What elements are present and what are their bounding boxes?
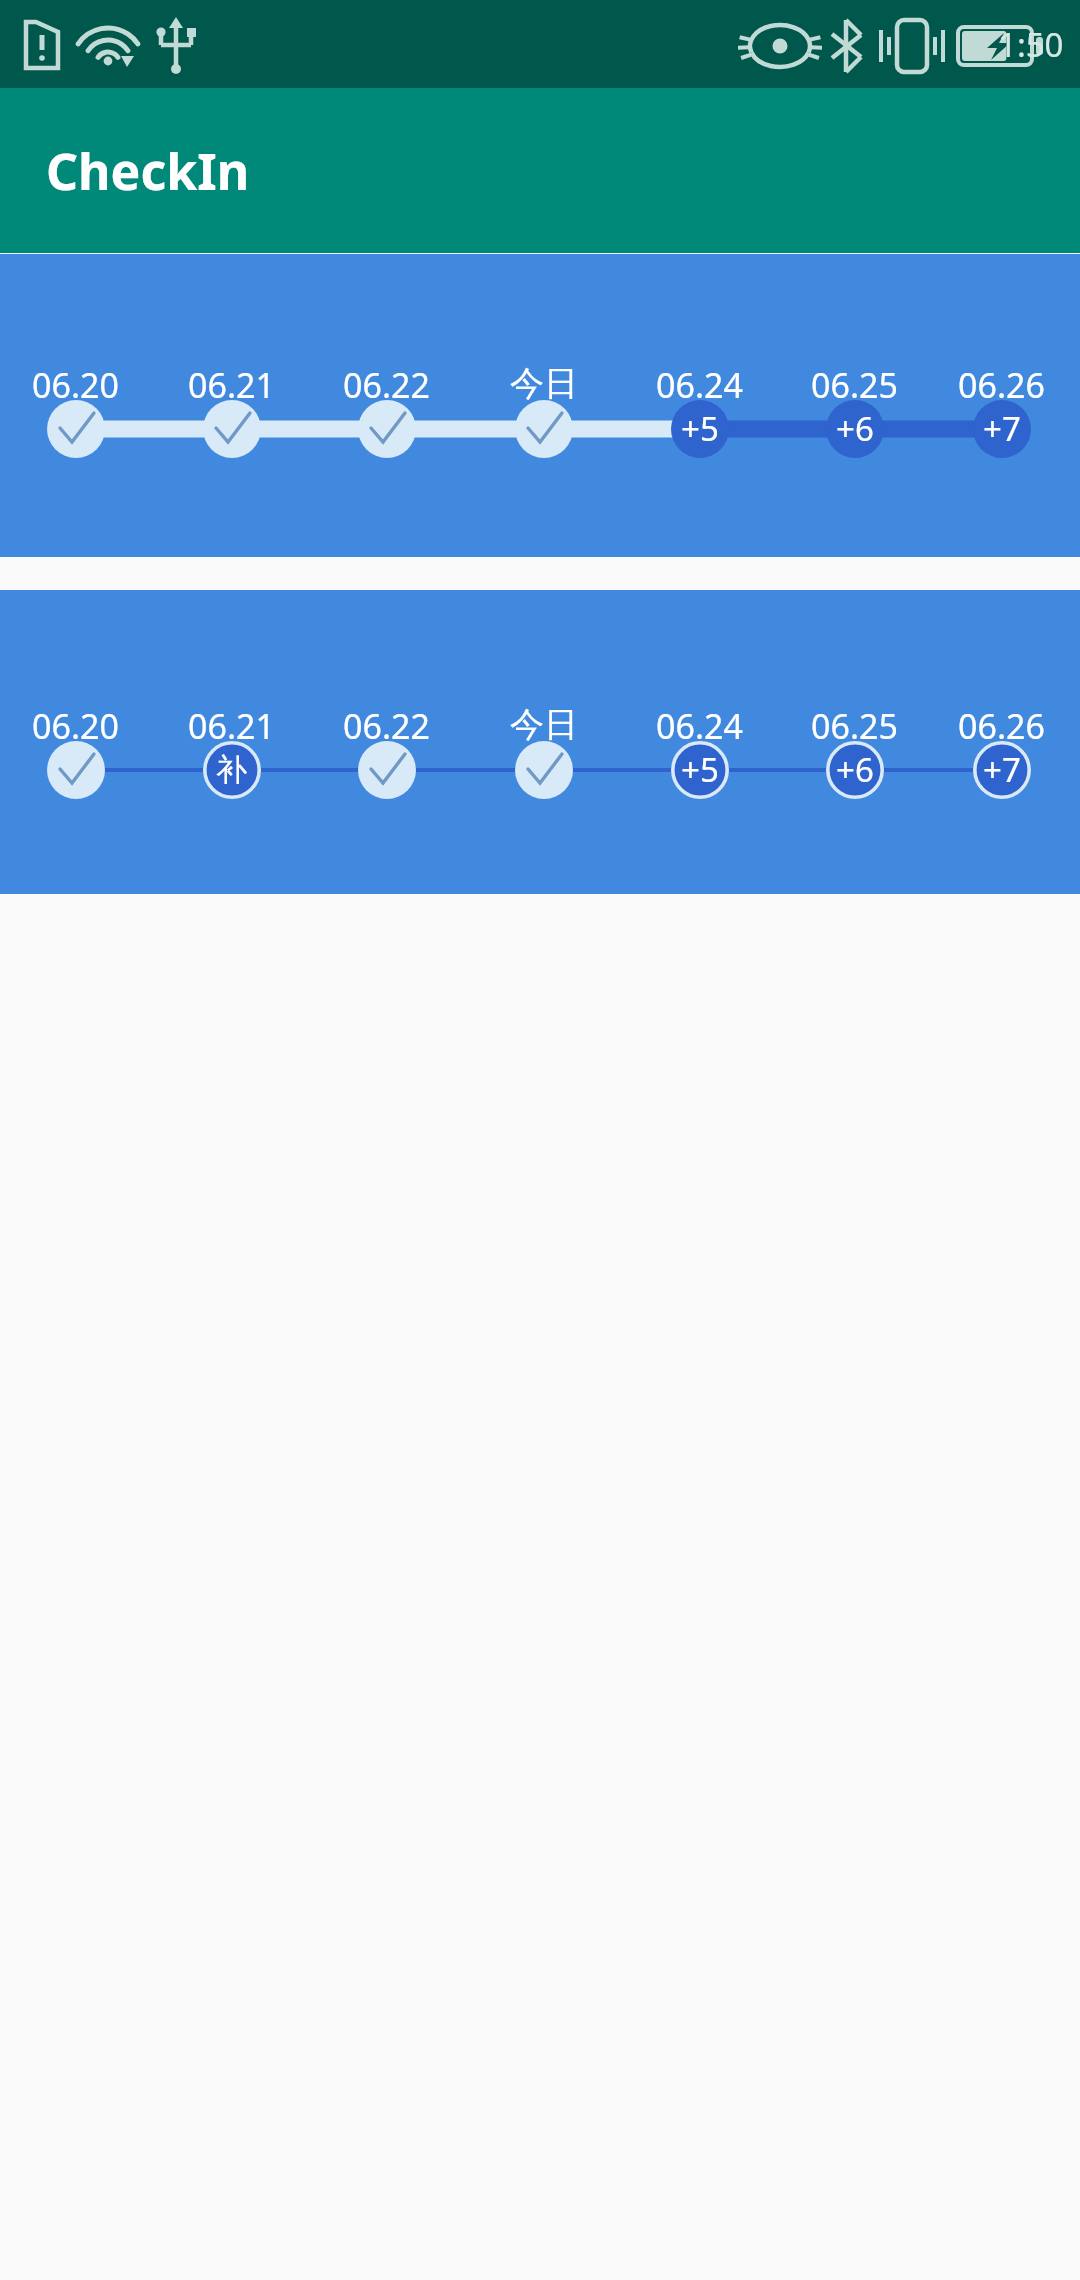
staticText: +6 xyxy=(836,747,874,792)
staticText: 06.21 xyxy=(188,362,275,408)
staticText: CheckIn xyxy=(46,137,250,205)
staticText: 06.24 xyxy=(656,703,743,749)
staticText: +5 xyxy=(681,747,719,792)
staticText: 06.25 xyxy=(811,362,898,408)
staticText: 06.24 xyxy=(656,362,743,408)
staticText: 今日 xyxy=(510,703,578,746)
staticText: 补 xyxy=(216,750,247,789)
staticText: 06.26 xyxy=(958,703,1045,749)
button[interactable]: Weekly check-in timeline xyxy=(0,254,1080,557)
staticText: +6 xyxy=(836,406,874,451)
staticText: +7 xyxy=(983,747,1021,792)
staticText: 06.22 xyxy=(343,362,430,408)
staticText: 06.21 xyxy=(188,703,275,749)
staticText: 今日 xyxy=(510,362,578,405)
staticText: +5 xyxy=(681,406,719,451)
button[interactable]: Weekly check-in timeline xyxy=(0,590,1080,894)
staticText: 06.20 xyxy=(32,362,119,408)
staticText: 06.25 xyxy=(811,703,898,749)
staticText: 1:50 xyxy=(998,22,1064,67)
staticText: 06.26 xyxy=(958,362,1045,408)
staticText: +7 xyxy=(983,406,1021,451)
staticText: 06.22 xyxy=(343,703,430,749)
staticText: 06.20 xyxy=(32,703,119,749)
